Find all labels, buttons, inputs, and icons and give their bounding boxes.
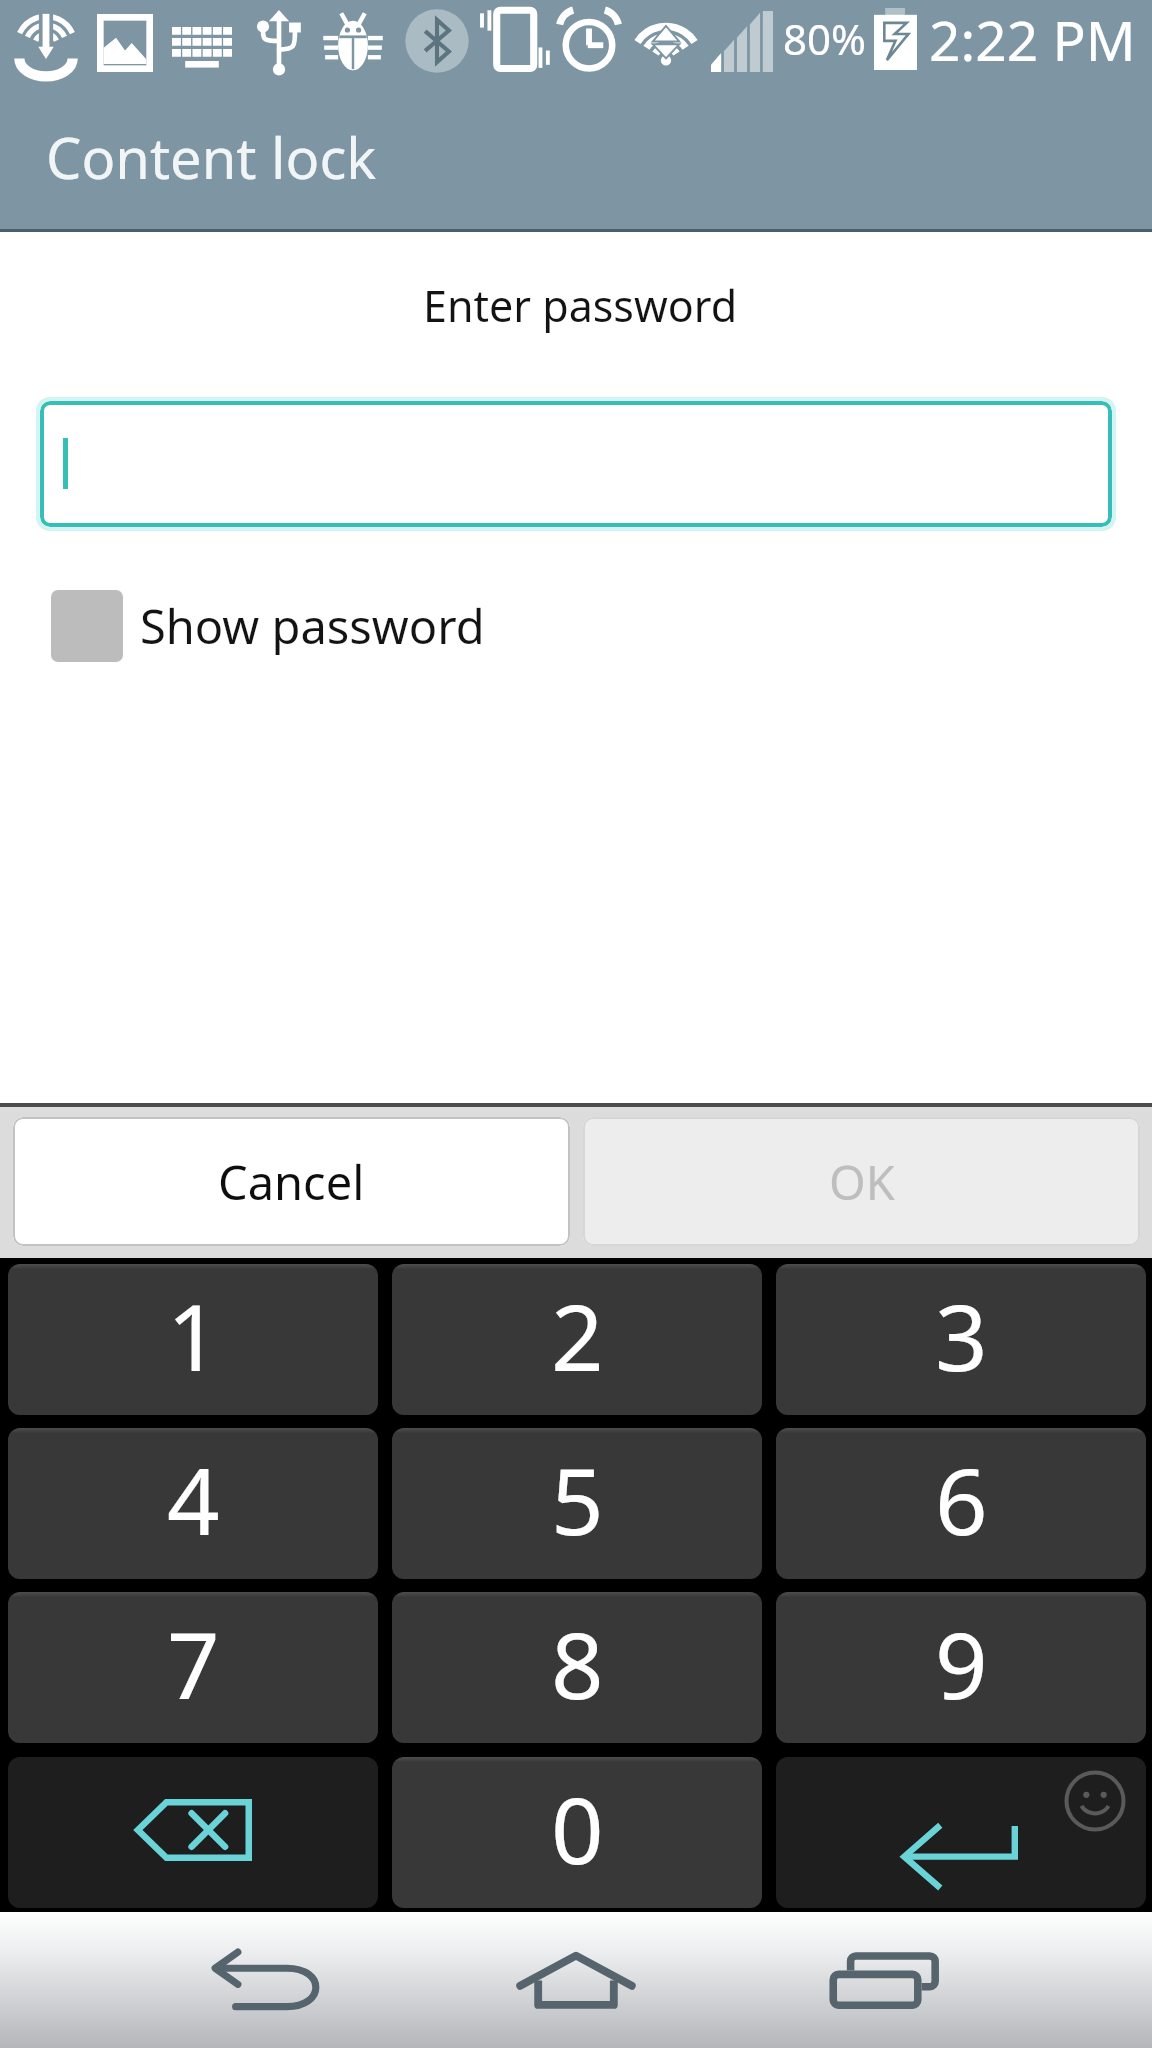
button[interactable]: 7 bbox=[8, 1592, 378, 1743]
button[interactable]: Backspace bbox=[8, 1757, 378, 1908]
button[interactable]: 9 bbox=[776, 1592, 1146, 1743]
staticText: 80% bbox=[783, 10, 866, 67]
staticText: 6 bbox=[935, 1437, 988, 1562]
staticText: 8 bbox=[551, 1601, 604, 1726]
staticText: 2 bbox=[551, 1273, 604, 1398]
staticText: Content lock bbox=[46, 119, 377, 195]
staticText: 1 bbox=[167, 1273, 220, 1398]
button[interactable]: 8 bbox=[392, 1592, 762, 1743]
staticText: 5 bbox=[551, 1437, 604, 1562]
staticText: 0 bbox=[551, 1766, 604, 1891]
button[interactable]: Back bbox=[166, 1912, 362, 2048]
button[interactable]: 2 bbox=[392, 1264, 762, 1415]
staticText: 7 bbox=[167, 1601, 220, 1726]
button[interactable]: 1 bbox=[8, 1264, 378, 1415]
button[interactable]: OK bbox=[583, 1117, 1140, 1246]
button[interactable]: Cancel bbox=[13, 1117, 570, 1246]
staticText: Enter password bbox=[423, 276, 738, 335]
button[interactable]: 3 bbox=[776, 1264, 1146, 1415]
button[interactable]: Recents bbox=[789, 1912, 985, 2048]
staticText: 3 bbox=[935, 1273, 988, 1398]
button[interactable]: Show password bbox=[51, 590, 485, 662]
button[interactable]: 0 bbox=[392, 1757, 762, 1908]
button[interactable]: 6 bbox=[776, 1428, 1146, 1579]
staticText: 2:22 PM bbox=[929, 2, 1136, 77]
button[interactable]: 5 bbox=[392, 1428, 762, 1579]
staticText: 9 bbox=[935, 1601, 988, 1726]
button[interactable]: Home bbox=[478, 1912, 674, 2048]
staticText: OK bbox=[829, 1150, 895, 1214]
button[interactable]: Enter bbox=[776, 1757, 1146, 1908]
button[interactable] bbox=[40, 401, 1112, 527]
staticText: Show password bbox=[140, 594, 485, 658]
button[interactable]: 4 bbox=[8, 1428, 378, 1579]
staticText: 4 bbox=[167, 1437, 220, 1562]
staticText: Cancel bbox=[218, 1150, 365, 1214]
